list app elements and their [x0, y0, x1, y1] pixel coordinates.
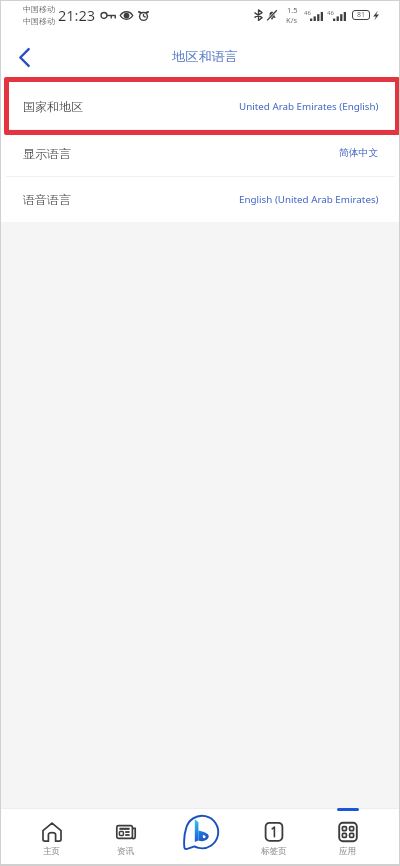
staticText: 应用 — [339, 846, 357, 857]
button[interactable]: 标签页 — [237, 809, 311, 864]
staticText: 资讯 — [117, 846, 135, 857]
staticText: 主页 — [43, 846, 61, 857]
button[interactable]: 语音语言 — [0, 177, 400, 222]
staticText: English (United Arab Emirates) — [239, 193, 379, 206]
staticText: United Arab Emirates (English) — [239, 100, 379, 113]
button[interactable]: 显示语言 — [0, 130, 400, 176]
staticText: 显示语言 — [23, 146, 71, 161]
staticText: 1.5 — [287, 5, 298, 15]
button[interactable]: 资讯 — [89, 809, 163, 864]
button[interactable]: 应用 — [311, 809, 385, 864]
staticText: 国家和地区 — [23, 99, 83, 114]
staticText: 81 — [357, 10, 366, 20]
button[interactable]: 国家和地区 — [0, 83, 400, 129]
staticText: 简体中文 — [339, 147, 379, 159]
staticText: 语音语言 — [23, 192, 71, 207]
staticText: 46 — [327, 9, 334, 17]
staticText: 中国移动 — [23, 16, 55, 26]
staticText: 中国移动 — [23, 4, 55, 14]
staticText: 46 — [304, 9, 311, 17]
button[interactable]: 主页 — [14, 809, 89, 864]
staticText: 标签页 — [261, 846, 287, 857]
staticText: K/s — [286, 15, 298, 25]
staticText: 地区和语言 — [172, 48, 238, 65]
button[interactable]: Back — [4, 37, 44, 77]
button[interactable]: Bing search — [163, 809, 237, 864]
staticText: 21:23 — [58, 5, 96, 25]
